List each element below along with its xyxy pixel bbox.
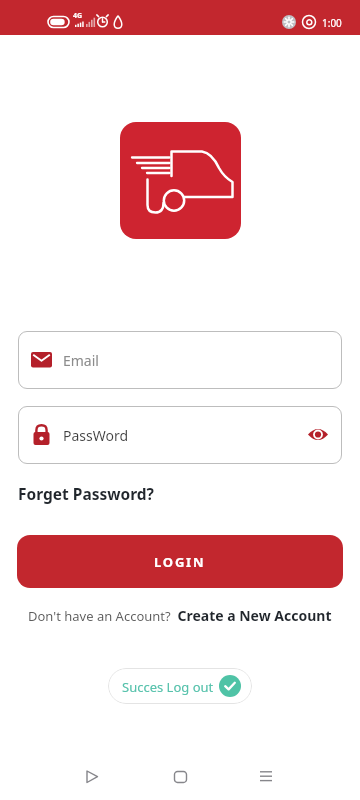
button[interactable]: [160, 761, 200, 791]
staticText: 4G: [73, 11, 83, 21]
staticText: LOGIN: [154, 553, 206, 571]
staticText: PassWord: [63, 426, 129, 445]
staticText: Email: [63, 351, 99, 370]
staticText: Succes Log out: [122, 678, 214, 696]
button[interactable]: PassWord: [18, 406, 342, 464]
button[interactable]: Forget Password?: [18, 483, 155, 504]
staticText: 1:00: [322, 16, 342, 30]
button[interactable]: LOGIN: [17, 535, 343, 588]
button[interactable]: Email: [18, 331, 342, 389]
button[interactable]: Don't have an Account? Create a New Acco…: [28, 606, 332, 625]
button[interactable]: [72, 761, 112, 791]
button[interactable]: [296, 423, 340, 447]
button[interactable]: [246, 761, 286, 791]
